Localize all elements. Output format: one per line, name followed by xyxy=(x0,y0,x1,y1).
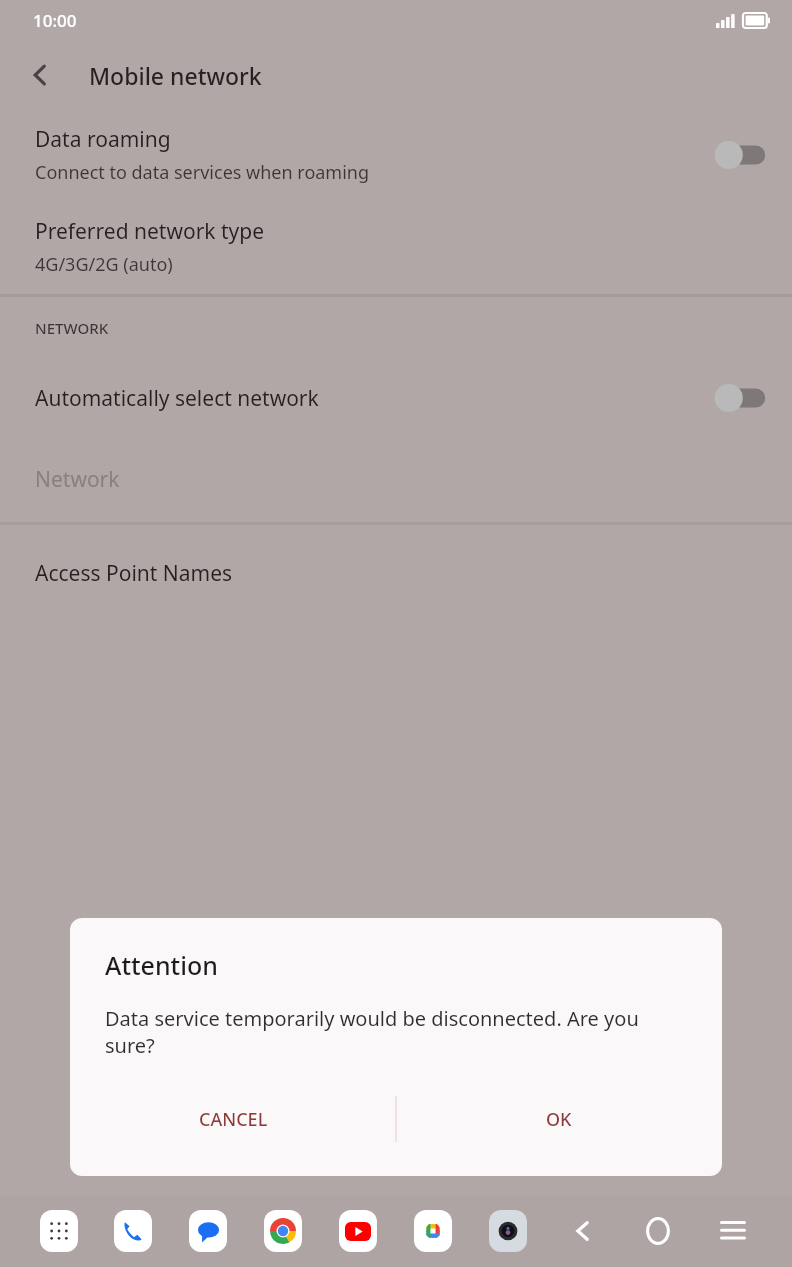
button[interactable]: CANCEL xyxy=(70,1086,396,1152)
staticText: Connect to data services when roaming xyxy=(35,160,370,185)
staticText: 10:00 xyxy=(33,9,77,32)
button[interactable]: OK xyxy=(396,1086,722,1152)
button[interactable]: Photos xyxy=(395,1195,470,1267)
button[interactable]: Messages xyxy=(170,1195,245,1267)
button[interactable]: Automatically select network toggle xyxy=(710,379,770,417)
button[interactable]: Recent apps xyxy=(695,1195,770,1267)
staticText: Data roaming xyxy=(35,125,171,154)
button[interactable]: Back xyxy=(545,1195,620,1267)
staticText: Preferred network type xyxy=(35,217,265,246)
staticText: NETWORK xyxy=(35,318,109,338)
staticText: Data service temporarily would be discon… xyxy=(105,1005,692,1059)
staticText: 4G/3G/2G (auto) xyxy=(35,252,173,277)
staticText: Network xyxy=(35,465,120,494)
staticText: Access Point Names xyxy=(35,559,233,588)
staticText: CANCEL xyxy=(199,1107,268,1132)
staticText: Mobile network xyxy=(89,60,262,91)
button[interactable]: Automatically select network xyxy=(0,359,792,437)
staticText: Attention xyxy=(105,948,218,982)
button[interactable]: Phone xyxy=(96,1195,170,1267)
button[interactable]: YouTube xyxy=(320,1195,395,1267)
button[interactable]: Data roaming xyxy=(0,110,792,200)
button[interactable]: Data roaming toggle xyxy=(710,136,770,174)
button[interactable]: Home xyxy=(620,1195,695,1267)
button[interactable]: Back xyxy=(12,47,68,103)
button[interactable]: Preferred network type xyxy=(0,200,792,294)
staticText: Automatically select network xyxy=(35,384,319,413)
button[interactable]: Camera xyxy=(470,1195,545,1267)
button[interactable]: Access Point Names xyxy=(0,525,792,621)
button[interactable]: All apps xyxy=(22,1195,96,1267)
button[interactable]: Chrome xyxy=(245,1195,320,1267)
staticText: OK xyxy=(546,1107,572,1132)
